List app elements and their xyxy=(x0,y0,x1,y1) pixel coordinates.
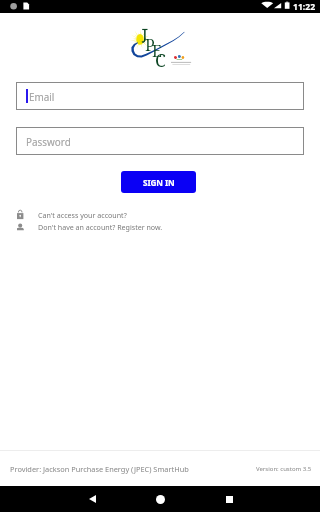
button[interactable]: Can't access your account? xyxy=(17,209,320,221)
staticText: SIGN IN xyxy=(143,177,175,188)
button[interactable]: SIGN IN xyxy=(121,171,196,193)
button[interactable]: Recent apps xyxy=(216,486,242,512)
button[interactable]: Back xyxy=(79,486,105,512)
staticText: P xyxy=(145,34,155,56)
staticText: Can't access your account? xyxy=(38,210,127,220)
button[interactable]: Don't have an account? Register now. xyxy=(17,221,320,233)
staticText: E xyxy=(152,40,162,62)
staticText: Version: custom 3.5 xyxy=(256,465,312,473)
staticText: C xyxy=(155,48,166,72)
staticText: Email xyxy=(29,90,55,103)
button[interactable]: Email xyxy=(16,82,304,110)
button[interactable]: Home xyxy=(147,486,173,512)
staticText: 11:22 xyxy=(293,1,316,13)
staticText: Password xyxy=(26,135,71,148)
staticText: Don't have an account? Register now. xyxy=(38,222,163,232)
button[interactable]: Password xyxy=(16,127,304,155)
staticText: Provider: Jackson Purchase Energy (JPEC)… xyxy=(10,464,189,474)
